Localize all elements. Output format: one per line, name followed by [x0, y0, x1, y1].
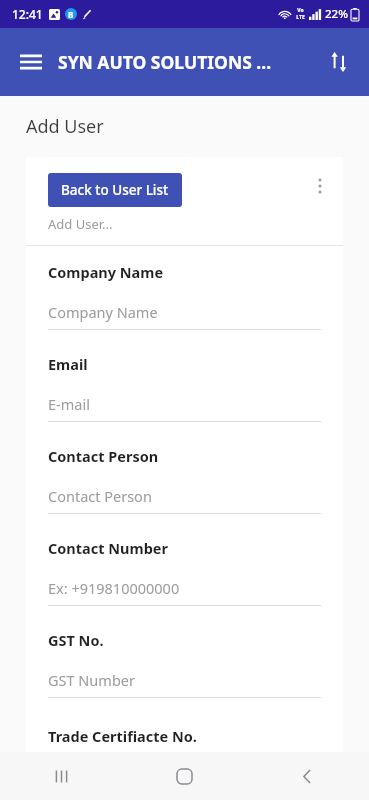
staticText: Company Name [48, 302, 158, 322]
staticText: Contact Person [48, 486, 152, 506]
staticText: 22% [325, 6, 348, 22]
staticText: Back to User List [61, 181, 169, 199]
staticText: Contact Number [48, 538, 168, 558]
staticText: Trade Certifiacte No. [48, 726, 197, 746]
staticText: Company Name [48, 262, 164, 282]
button[interactable]: Recent apps [0, 752, 123, 800]
button[interactable]: Email [26, 354, 343, 446]
button[interactable]: GST No. [26, 630, 343, 722]
staticText: Ex: +919810000000 [48, 578, 180, 598]
button[interactable]: Back to User List [48, 173, 182, 207]
staticText: 12:41 [12, 6, 43, 22]
staticText: LTE [296, 14, 305, 21]
staticText: SYN AUTO SOLUTIONS … [58, 50, 272, 74]
button[interactable]: More options [303, 169, 337, 203]
button[interactable]: Contact Person [26, 446, 343, 538]
staticText: GST Number [48, 670, 135, 690]
staticText: GST No. [48, 630, 104, 650]
staticText: E-mail [48, 394, 90, 414]
staticText: Add User... [48, 215, 113, 233]
button[interactable]: Open navigation menu [10, 41, 52, 83]
button[interactable]: Company Name [26, 262, 343, 354]
button[interactable]: Home [123, 752, 246, 800]
staticText: Email [48, 354, 88, 374]
staticText: Vo [297, 7, 304, 14]
button[interactable]: Contact Number [26, 538, 343, 630]
button[interactable]: Back [246, 752, 369, 800]
staticText: Contact Person [48, 446, 159, 466]
staticText: B [68, 9, 74, 20]
button[interactable]: Sort [317, 40, 361, 84]
staticText: Add User [26, 114, 104, 139]
